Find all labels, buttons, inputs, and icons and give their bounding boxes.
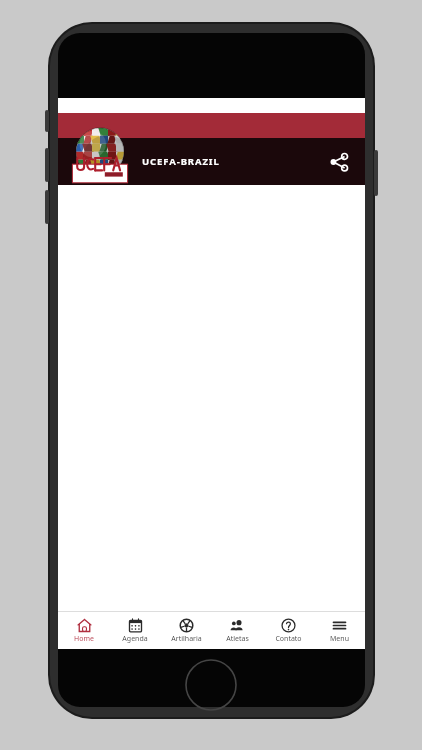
button[interactable]: Artilharia [161,612,211,649]
button[interactable]: Atletas [212,612,262,649]
button[interactable]: Agenda [110,612,160,649]
button[interactable]: Menu [314,612,364,649]
staticText: Home [74,634,94,644]
staticText: UCEFA-BRAZIL [142,155,220,168]
button[interactable]: Home [59,612,109,649]
staticText: Contato [275,634,302,644]
staticText: Agenda [122,634,148,644]
button[interactable]: Share [321,144,357,180]
staticText: Menu [330,634,349,644]
staticText: Artilharia [171,634,202,644]
staticText: Atletas [226,634,249,644]
button[interactable]: Contato [263,612,313,649]
